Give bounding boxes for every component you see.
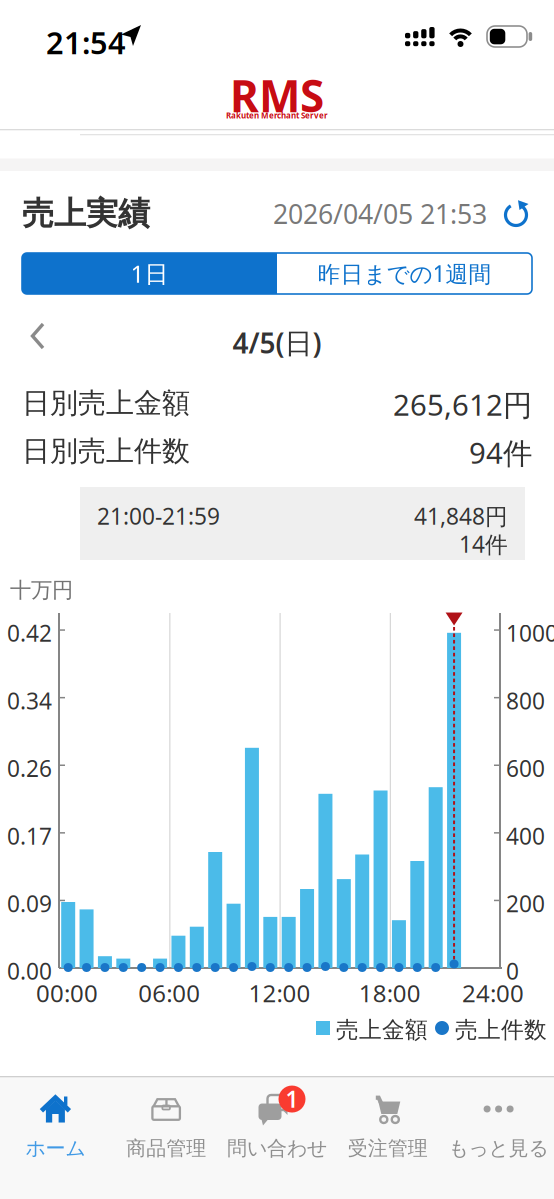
staticText: 600: [506, 753, 545, 783]
staticText: 24:00: [462, 977, 524, 1009]
staticText: 受注管理: [348, 1136, 428, 1161]
staticText: 2026/04/05 21:53: [273, 196, 487, 231]
button[interactable]: 受注管理: [332, 1089, 443, 1161]
button[interactable]: 昨日までの1週間: [277, 253, 532, 294]
staticText: もっと見る: [449, 1136, 549, 1161]
staticText: 0.17: [7, 821, 52, 851]
staticText: 日別売上金額: [22, 386, 190, 420]
staticText: 売上金額: [336, 1016, 428, 1044]
button[interactable]: 商品管理: [111, 1089, 222, 1161]
button[interactable]: 前の日: [30, 322, 46, 350]
staticText: 日別売上件数: [22, 434, 190, 468]
staticText: 商品管理: [126, 1136, 206, 1161]
button[interactable]: ホーム: [0, 1089, 111, 1161]
staticText: 06:00: [138, 977, 200, 1009]
staticText: 0.09: [7, 888, 52, 918]
staticText: 400: [506, 821, 545, 851]
staticText: 1日: [130, 258, 168, 289]
staticText: 0.26: [7, 753, 52, 783]
staticText: 1000: [506, 618, 554, 648]
staticText: 21:54: [46, 22, 126, 63]
staticText: 売上件数: [455, 1016, 547, 1044]
staticText: 問い合わせ: [227, 1136, 327, 1161]
staticText: 21:00-21:59: [97, 501, 220, 531]
staticText: 昨日までの1週間: [317, 258, 491, 288]
staticText: 41,848円: [414, 501, 508, 531]
staticText: 00:00: [36, 977, 98, 1009]
button[interactable]: 1: [222, 1089, 332, 1161]
button[interactable]: 更新: [503, 198, 533, 228]
staticText: 12:00: [248, 977, 310, 1009]
staticText: 200: [506, 888, 545, 918]
button[interactable]: 1日: [22, 253, 277, 294]
staticText: Rakuten Merchant Server: [226, 110, 328, 121]
staticText: 0.42: [7, 618, 52, 648]
staticText: 売上実績: [22, 194, 150, 233]
staticText: 800: [506, 686, 545, 716]
staticText: 94件: [469, 433, 532, 472]
staticText: RMS: [230, 66, 324, 124]
staticText: 4/5(日): [232, 324, 321, 361]
button[interactable]: もっと見る: [443, 1089, 554, 1161]
staticText: ホーム: [25, 1136, 85, 1161]
staticText: 18:00: [359, 977, 421, 1009]
staticText: 十万円: [10, 577, 73, 603]
staticText: 0.34: [7, 686, 52, 716]
staticText: 1: [285, 1084, 298, 1114]
staticText: 14件: [459, 529, 508, 559]
staticText: 0.00: [7, 956, 52, 986]
staticText: 0: [506, 956, 519, 986]
staticText: 265,612円: [393, 385, 532, 424]
